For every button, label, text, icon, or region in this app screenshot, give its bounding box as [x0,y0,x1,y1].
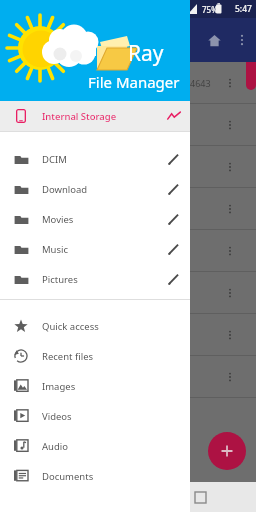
staticText: Pictures [42,273,78,286]
staticText: Quick access [42,320,99,333]
button[interactable]: Videos [0,401,190,431]
button[interactable]: Item menu [0,146,256,188]
button[interactable]: Internal Storage [0,101,190,131]
button[interactable]: Audio [0,431,190,461]
button[interactable]: 4643 [0,62,256,104]
button[interactable]: Documents [0,461,190,491]
button[interactable]: Item menu [220,367,240,387]
button[interactable]: Edit Pictures [156,264,190,294]
button[interactable]: Edit Music [156,234,190,264]
button[interactable]: Recent files [0,341,190,371]
button[interactable]: Add [208,432,246,470]
staticText: 75% [202,4,218,15]
button[interactable]: More options [230,28,254,52]
button[interactable]: Item menu [220,115,240,135]
staticText: Download [42,183,88,196]
button[interactable]: Item menu [220,157,240,177]
staticText: Ray [128,39,164,68]
button[interactable]: Item menu [220,241,240,261]
staticText: 4643 [190,77,211,89]
staticText: Music [42,243,69,256]
staticText: Movies [42,213,74,226]
button[interactable]: Item menu [220,283,240,303]
staticText: Internal Storage [42,110,117,123]
staticText: Images [42,380,76,393]
button[interactable]: Item menu [0,356,256,398]
button[interactable]: Item menu [0,104,256,146]
button[interactable]: Home [200,26,228,54]
button[interactable]: Item menu [0,272,256,314]
button[interactable]: Edit Movies [156,204,190,234]
button[interactable]: Item menu [220,199,240,219]
button[interactable]: Quick access [0,311,190,341]
button[interactable]: Edit DCIM [156,144,190,174]
button[interactable]: DCIM [0,144,190,174]
staticText: 5:47 [235,3,252,15]
staticText: DCIM [42,153,67,166]
button[interactable]: Music [0,234,190,264]
button[interactable]: Download [0,174,190,204]
button[interactable]: Edit Download [156,174,190,204]
staticText: Recent files [42,350,94,363]
button[interactable]: Recents [185,482,215,512]
button[interactable]: Pictures [0,264,190,294]
button[interactable]: Item menu [0,188,256,230]
staticText: Videos [42,410,72,423]
button[interactable]: Item menu [220,325,240,345]
button[interactable]: Item menu [0,230,256,272]
staticText: Audio [42,440,68,453]
button[interactable]: Movies [0,204,190,234]
staticText: Documents [42,470,94,483]
button[interactable]: Item menu [220,73,240,93]
button[interactable]: Images [0,371,190,401]
button[interactable]: Item menu [0,314,256,356]
staticText: File Manager [88,72,180,92]
